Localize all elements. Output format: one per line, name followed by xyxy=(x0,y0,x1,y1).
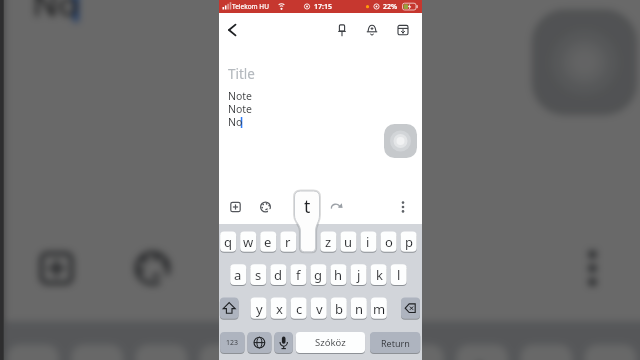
staticText: u xyxy=(404,349,432,360)
staticText: Note Note No xyxy=(32,0,112,25)
staticText: 123 xyxy=(226,338,239,348)
staticText: u xyxy=(344,233,353,251)
staticText: m xyxy=(373,300,386,318)
staticText: Return xyxy=(381,337,410,349)
staticText: z xyxy=(343,349,365,360)
staticText: q xyxy=(224,233,232,251)
staticText: i xyxy=(366,233,370,251)
staticText: Telekom HU xyxy=(232,2,269,11)
staticText: t xyxy=(304,194,311,218)
staticText: w xyxy=(243,233,254,251)
staticText: j xyxy=(357,266,361,284)
staticText: h xyxy=(334,266,343,284)
staticText: x xyxy=(276,300,283,318)
staticText: s xyxy=(255,266,262,284)
staticText: c xyxy=(296,300,303,318)
staticText: v xyxy=(316,300,323,318)
staticText: f xyxy=(296,266,301,284)
staticText: e xyxy=(264,233,272,251)
staticText: r xyxy=(285,233,291,251)
staticText: Szóköz xyxy=(315,336,346,349)
staticText: n xyxy=(355,300,364,318)
staticText: 22% xyxy=(383,2,398,12)
staticText: a xyxy=(234,266,242,284)
staticText: z xyxy=(325,233,332,251)
staticText: 17:15 xyxy=(314,2,332,12)
staticText: o xyxy=(385,233,393,251)
staticText: g xyxy=(314,266,322,284)
staticText: p xyxy=(405,233,413,251)
staticText: r xyxy=(215,349,234,360)
staticText: t xyxy=(276,228,298,303)
staticText: Note Note No xyxy=(228,89,253,129)
staticText: b xyxy=(335,300,343,318)
staticText: Title xyxy=(228,65,255,83)
staticText: l xyxy=(397,266,401,284)
staticText: d xyxy=(274,266,282,284)
staticText: y xyxy=(256,300,263,318)
staticText: k xyxy=(376,266,383,284)
